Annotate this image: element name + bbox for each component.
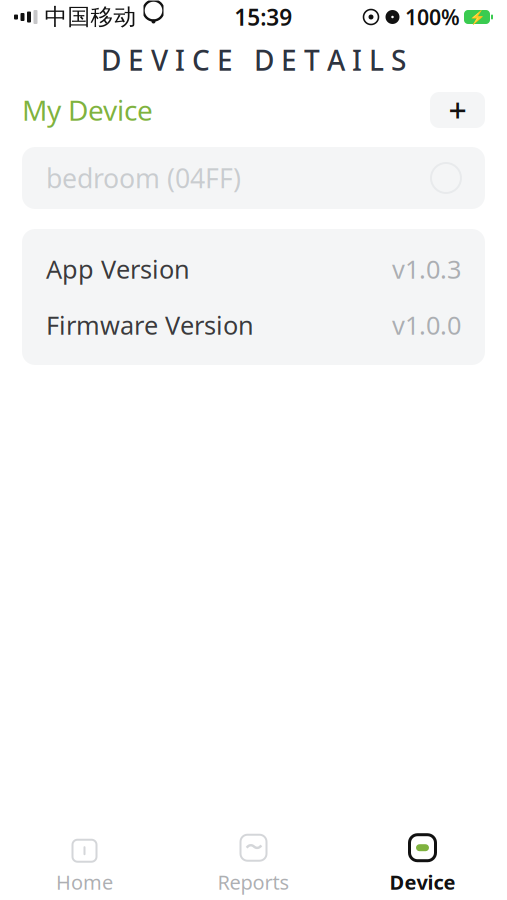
staticText: Device bbox=[389, 869, 455, 895]
staticText: D E V I C E D E T A I L S bbox=[101, 41, 406, 79]
staticText: 100% bbox=[405, 3, 460, 31]
button[interactable]: Home bbox=[0, 828, 169, 900]
staticText: v1.0.0 bbox=[392, 308, 461, 342]
staticText: Reports bbox=[217, 869, 289, 895]
staticText: 中国移动 bbox=[44, 3, 136, 31]
button[interactable]: Add device bbox=[430, 92, 485, 128]
button[interactable]: Device bbox=[338, 828, 507, 900]
staticText: 〜 bbox=[245, 837, 262, 858]
staticText: My Device bbox=[22, 91, 153, 129]
staticText: Firmware Version bbox=[46, 308, 254, 342]
staticText: 15:39 bbox=[234, 2, 292, 32]
button[interactable]: bedroom (04FF) bbox=[22, 147, 485, 209]
staticText: v1.0.3 bbox=[392, 252, 461, 286]
staticText: bedroom (04FF) bbox=[46, 160, 241, 196]
staticText: + bbox=[448, 89, 466, 131]
button[interactable]: 〜 bbox=[169, 828, 338, 900]
staticText: App Version bbox=[46, 252, 190, 286]
staticText: Home bbox=[56, 869, 113, 895]
staticText: ⚡ bbox=[468, 9, 485, 25]
